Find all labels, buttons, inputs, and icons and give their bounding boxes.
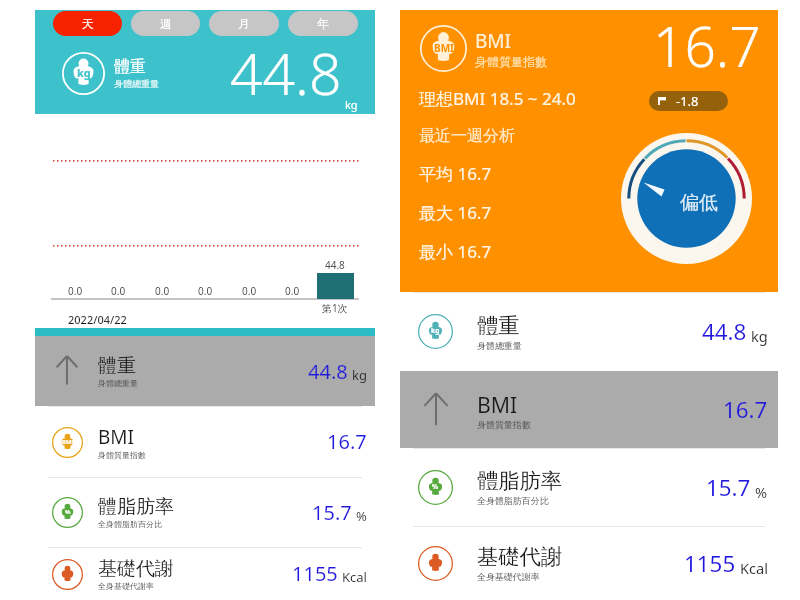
staticText: % (755, 482, 768, 502)
staticText: 身體質量指數 (477, 419, 531, 430)
staticText: 16.7 (723, 394, 768, 425)
staticText: kg (77, 65, 91, 80)
button[interactable]: % (35, 477, 375, 547)
staticText: 基礎代謝 (98, 557, 174, 581)
staticText: 偏低 (680, 191, 718, 215)
button[interactable]: -1.8 (658, 91, 728, 111)
button[interactable]: 基礎代謝 (35, 547, 375, 600)
button[interactable]: BMI (400, 371, 778, 448)
staticText: 最大 16.7 (419, 201, 492, 224)
staticText: 全身基礎代謝率 (477, 571, 540, 582)
staticText: 體脂肪率 (477, 468, 563, 495)
staticText: 0.0 (111, 284, 126, 298)
staticText: 1155 (292, 560, 338, 587)
staticText: 平均 16.7 (419, 162, 492, 185)
button[interactable]: 基礎代謝 (400, 526, 778, 600)
staticText: 0.0 (285, 284, 300, 298)
staticText: BMI (62, 438, 74, 446)
staticText: 身體總重量 (114, 78, 159, 89)
button[interactable]: 週 (131, 11, 200, 36)
staticText: Kcal (342, 568, 367, 586)
staticText: % (65, 508, 71, 516)
staticText: 天 (82, 16, 94, 31)
staticText: 0.0 (68, 284, 83, 298)
staticText: 最小 16.7 (419, 240, 492, 263)
staticText: kg (345, 97, 358, 112)
staticText: 身體總重量 (477, 340, 522, 351)
staticText: 體重 (477, 313, 520, 340)
staticText: BMI (98, 424, 135, 450)
button[interactable]: 月 (209, 11, 279, 36)
staticText: 身體質量指數 (475, 54, 547, 69)
staticText: 月 (238, 16, 250, 31)
staticText: kg (751, 326, 768, 346)
staticText: 16.7 (327, 428, 367, 455)
staticText: 16.7 (653, 8, 761, 83)
staticText: 最近一週分析 (419, 126, 515, 146)
button[interactable]: 年 (288, 11, 358, 36)
staticText: 身體總重量 (98, 378, 138, 388)
staticText: 0.0 (198, 284, 213, 298)
staticText: 體脂肪率 (98, 495, 174, 519)
staticText: % (432, 482, 439, 491)
staticText: -1.8 (676, 92, 699, 110)
staticText: BMI (475, 28, 512, 54)
staticText: BMI (477, 390, 518, 419)
staticText: 44.8 (702, 316, 747, 347)
staticText: 44.8 (325, 258, 345, 272)
staticText: 0.0 (242, 284, 257, 298)
staticText: 全身體脂肪百分比 (98, 519, 162, 529)
staticText: 15.7 (706, 472, 751, 503)
button[interactable]: % (400, 448, 778, 526)
staticText: 全身基礎代謝率 (98, 581, 154, 591)
staticText: 週 (160, 16, 172, 31)
staticText: 1155 (684, 548, 736, 579)
staticText: 體重 (98, 354, 136, 378)
staticText: Kcal (740, 558, 768, 578)
staticText: kg (431, 326, 440, 335)
staticText: 身體質量指數 (98, 450, 146, 460)
staticText: 44.8 (230, 34, 342, 104)
staticText: 0.0 (155, 284, 170, 298)
staticText: 理想BMI 18.5 ~ 24.0 (419, 87, 576, 110)
staticText: 基礎代謝 (477, 544, 563, 571)
button[interactable]: BMI (35, 406, 375, 477)
staticText: 15.7 (312, 499, 352, 526)
staticText: kg (352, 366, 367, 384)
button[interactable]: 體重 (35, 336, 375, 406)
button[interactable]: kg (400, 292, 778, 371)
staticText: % (356, 507, 367, 525)
staticText: 全身體脂肪百分比 (477, 495, 549, 506)
button[interactable]: 天 (53, 11, 122, 36)
staticText: 年 (317, 16, 329, 31)
staticText: 第1次 (322, 301, 348, 315)
staticText: BMI (434, 41, 454, 55)
staticText: 44.8 (308, 358, 348, 385)
staticText: 體重 (114, 57, 146, 77)
staticText: 2022/04/22 (68, 312, 127, 327)
